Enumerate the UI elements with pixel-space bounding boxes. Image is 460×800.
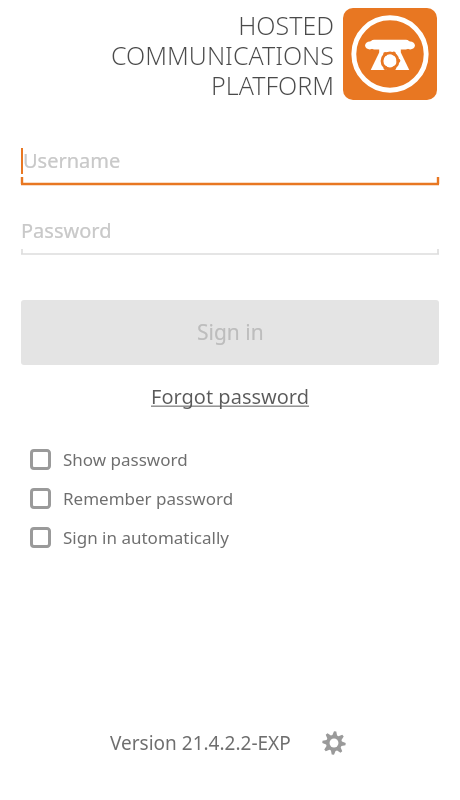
staticText: Forgot password xyxy=(151,383,310,410)
staticText: Sign in xyxy=(197,318,264,347)
button[interactable]: Settings xyxy=(317,726,351,760)
staticText: Show password xyxy=(63,448,188,471)
staticText: Password xyxy=(21,217,112,244)
button[interactable]: Show password xyxy=(30,440,439,479)
button[interactable]: Sign in automatically xyxy=(30,518,439,557)
staticText: Username xyxy=(23,147,121,174)
staticText: HOSTED COMMUNICATIONS PLATFORM xyxy=(111,8,334,102)
staticText: Remember password xyxy=(63,487,234,510)
button[interactable]: Password xyxy=(21,208,439,260)
button[interactable]: Forgot password xyxy=(143,379,318,414)
other: Hosted Communications Platform logo xyxy=(343,8,437,100)
button[interactable]: Sign in xyxy=(21,300,439,365)
button[interactable]: Remember password xyxy=(30,479,439,518)
staticText: Version 21.4.2.2-EXP xyxy=(110,730,291,756)
button[interactable]: Username xyxy=(21,138,439,190)
staticText: Sign in automatically xyxy=(63,526,229,549)
